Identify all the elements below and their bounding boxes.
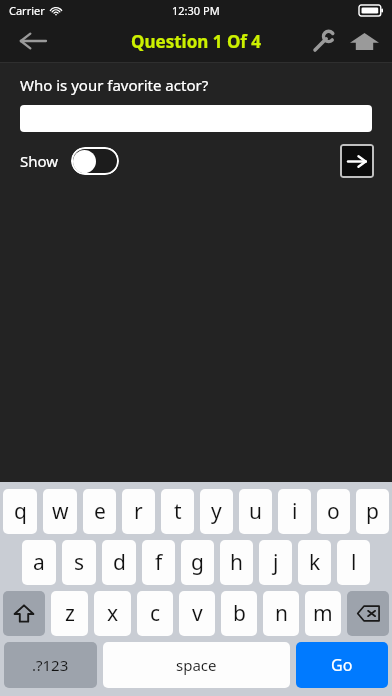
staticText: i [292,497,298,526]
button[interactable]: u [239,489,272,534]
staticText: z [65,599,75,628]
button[interactable]: s [62,540,96,585]
button[interactable]: p [356,489,389,534]
button[interactable]: k [298,540,331,585]
button[interactable]: l [337,540,370,585]
button[interactable]: d [102,540,136,585]
button[interactable]: n [263,591,299,636]
button[interactable]: h [220,540,253,585]
staticText: j [273,548,279,577]
button[interactable]: t [161,489,194,534]
button[interactable]: o [317,489,350,534]
button[interactable]: z [51,591,88,636]
button[interactable]: f [142,540,175,585]
staticText: m [313,599,333,628]
staticText: b [233,599,246,628]
button[interactable]: Shift [3,591,45,636]
button[interactable]: y [200,489,233,534]
staticText: k [309,548,321,577]
staticText: n [275,599,288,628]
staticText: q [14,497,27,526]
button[interactable]: Go [296,642,388,688]
staticText: h [230,548,243,577]
button[interactable]: Back [12,21,52,61]
staticText: 12:30 PM [172,3,220,18]
staticText: l [351,548,357,577]
staticText: o [327,497,340,526]
button[interactable]: Next question [340,144,374,178]
button[interactable]: w [43,489,77,534]
button[interactable]: g [181,540,214,585]
button[interactable]: r [122,489,155,534]
button[interactable]: Show answer toggle [71,147,119,175]
staticText: Carrier [9,3,45,18]
button[interactable]: Delete [347,591,389,636]
button[interactable]: a [22,540,56,585]
staticText: g [191,548,204,577]
staticText: Show [20,151,59,171]
staticText: u [249,497,262,526]
staticText: p [366,497,379,526]
button[interactable]: j [259,540,292,585]
button[interactable]: i [278,489,311,534]
staticText: Question 1 Of 4 [131,30,262,53]
staticText: Go [331,654,353,676]
staticText: t [174,497,182,526]
button[interactable]: .?123 [4,642,97,688]
staticText: y [211,497,222,526]
staticText: a [33,548,45,577]
button[interactable]: Home [344,21,384,61]
button[interactable]: c [137,591,173,636]
staticText: w [52,497,69,526]
button[interactable]: v [179,591,215,636]
button[interactable]: Settings [306,23,342,59]
staticText: Who is your favorite actor? [20,75,209,95]
button[interactable]: b [221,591,257,636]
staticText: .?123 [32,655,69,675]
staticText: d [113,548,126,577]
staticText: r [134,497,143,526]
staticText: space [176,655,217,675]
button[interactable]: m [305,591,341,636]
staticText: x [107,599,119,628]
button[interactable]: x [94,591,131,636]
staticText: s [74,548,85,577]
staticText: e [94,497,106,526]
button[interactable]: e [83,489,116,534]
button[interactable]: q [3,489,37,534]
staticText: f [155,548,163,577]
staticText: v [192,599,203,628]
staticText: c [150,599,161,628]
button[interactable]: space [103,642,290,688]
button[interactable] [20,105,372,132]
